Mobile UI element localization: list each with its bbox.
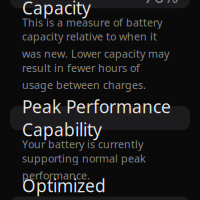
button[interactable]: Maximum Capacity [10, 0, 190, 8]
staticText: usage between charges. [22, 78, 146, 92]
staticText: This is a measure of battery capacity re… [22, 15, 162, 43]
staticText: Peak Performance Capability [22, 95, 171, 141]
staticText: was new. Lower capacity may result in fe… [22, 46, 169, 75]
staticText: Optimized Battery Charging [22, 174, 106, 200]
staticText: 76% [144, 0, 178, 8]
staticText: Your battery is currently supporting nor… [22, 137, 146, 165]
staticText: performance. [22, 168, 90, 182]
button[interactable]: Peak Performance Capability [10, 106, 190, 130]
staticText: Maximum Capacity [22, 0, 104, 19]
button[interactable]: Optimized Battery Charging [10, 196, 190, 200]
